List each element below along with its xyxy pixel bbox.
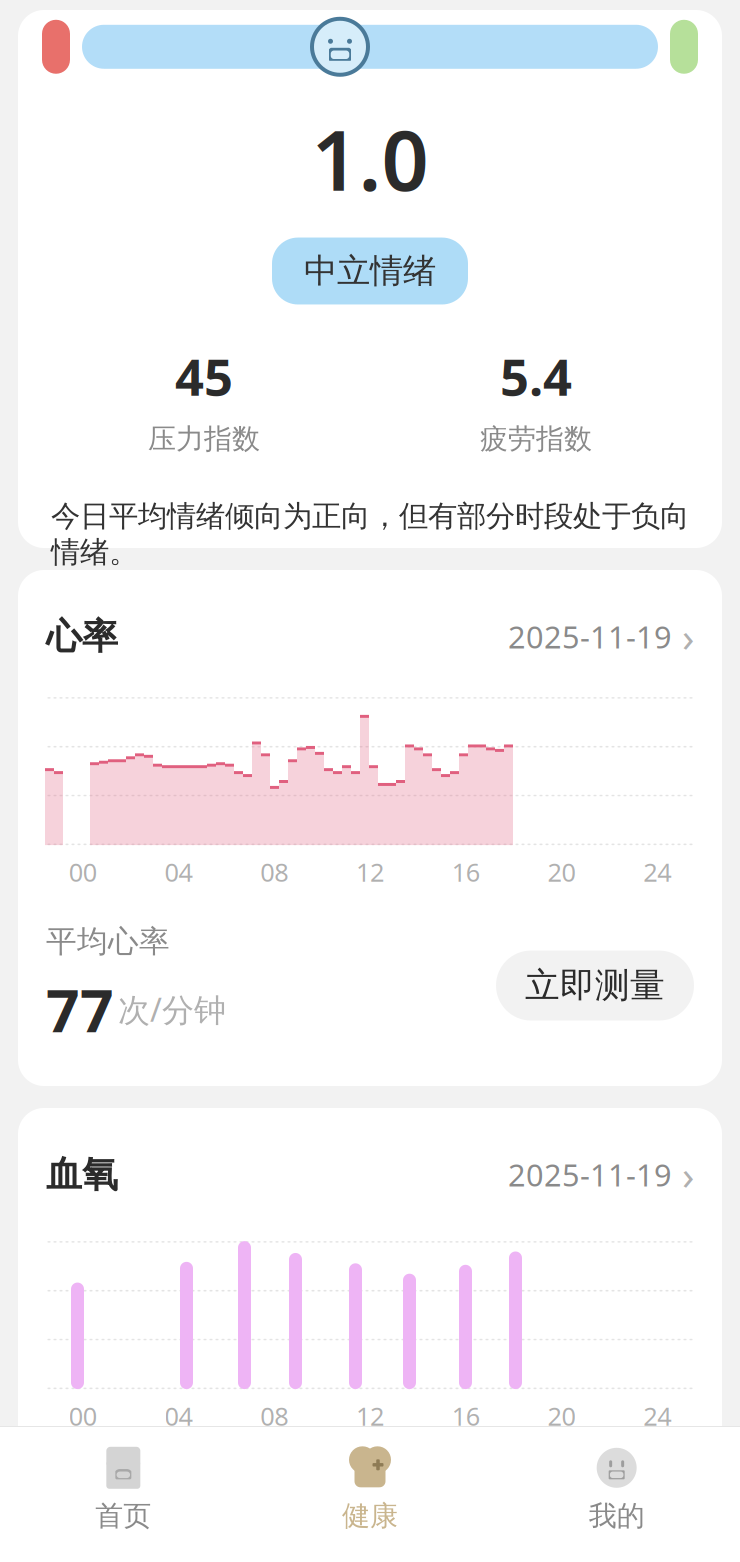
staticText: 24	[643, 855, 671, 889]
button[interactable]: 我的	[493, 1433, 740, 1533]
staticText: 5.4	[500, 342, 572, 410]
staticText: 次/分钟	[118, 988, 226, 1031]
button[interactable]: 中立情绪	[272, 238, 468, 304]
staticText: 2025-11-19	[508, 616, 672, 657]
staticText: 立即测量	[525, 964, 665, 1007]
staticText: 12	[356, 855, 384, 889]
staticText: 我的	[589, 1499, 645, 1533]
button[interactable]: 2025-11-19	[508, 610, 694, 663]
staticText: 12	[356, 1399, 384, 1433]
button[interactable]: 首页	[0, 1433, 247, 1533]
staticText: 00	[69, 1399, 97, 1433]
staticText: 血氧	[46, 1152, 118, 1197]
staticText: 16	[452, 1399, 480, 1433]
staticText: 20	[547, 1399, 575, 1433]
button[interactable]: 2025-11-19	[508, 1148, 694, 1201]
staticText: 20	[547, 855, 575, 889]
staticText: 1.0	[311, 104, 428, 214]
staticText: 77	[46, 970, 114, 1048]
button[interactable]: 健康	[247, 1433, 493, 1533]
button[interactable]: 立即测量	[496, 950, 694, 1020]
staticText: 45	[175, 342, 233, 410]
staticText: ›	[682, 1148, 694, 1201]
staticText: 今日平均情绪倾向为正向，但有部分时段处于负向情绪。	[51, 498, 689, 570]
staticText: 疲劳指数	[480, 422, 592, 456]
staticText: 16	[452, 855, 480, 889]
staticText: 中立情绪	[304, 251, 436, 291]
staticText: 00	[69, 855, 97, 889]
staticText: 2025-11-19	[508, 1154, 672, 1195]
staticText: 健康	[342, 1499, 398, 1533]
staticText: 04	[165, 855, 193, 889]
staticText: 24	[643, 1399, 671, 1433]
staticText: 平均心率	[46, 923, 170, 960]
staticText: 压力指数	[148, 422, 260, 456]
staticText: 08	[260, 1399, 288, 1433]
staticText: 心率	[46, 614, 118, 659]
staticText: 08	[260, 855, 288, 889]
staticText: 04	[165, 1399, 193, 1433]
staticText: 首页	[95, 1499, 151, 1533]
staticText: ›	[682, 610, 694, 663]
